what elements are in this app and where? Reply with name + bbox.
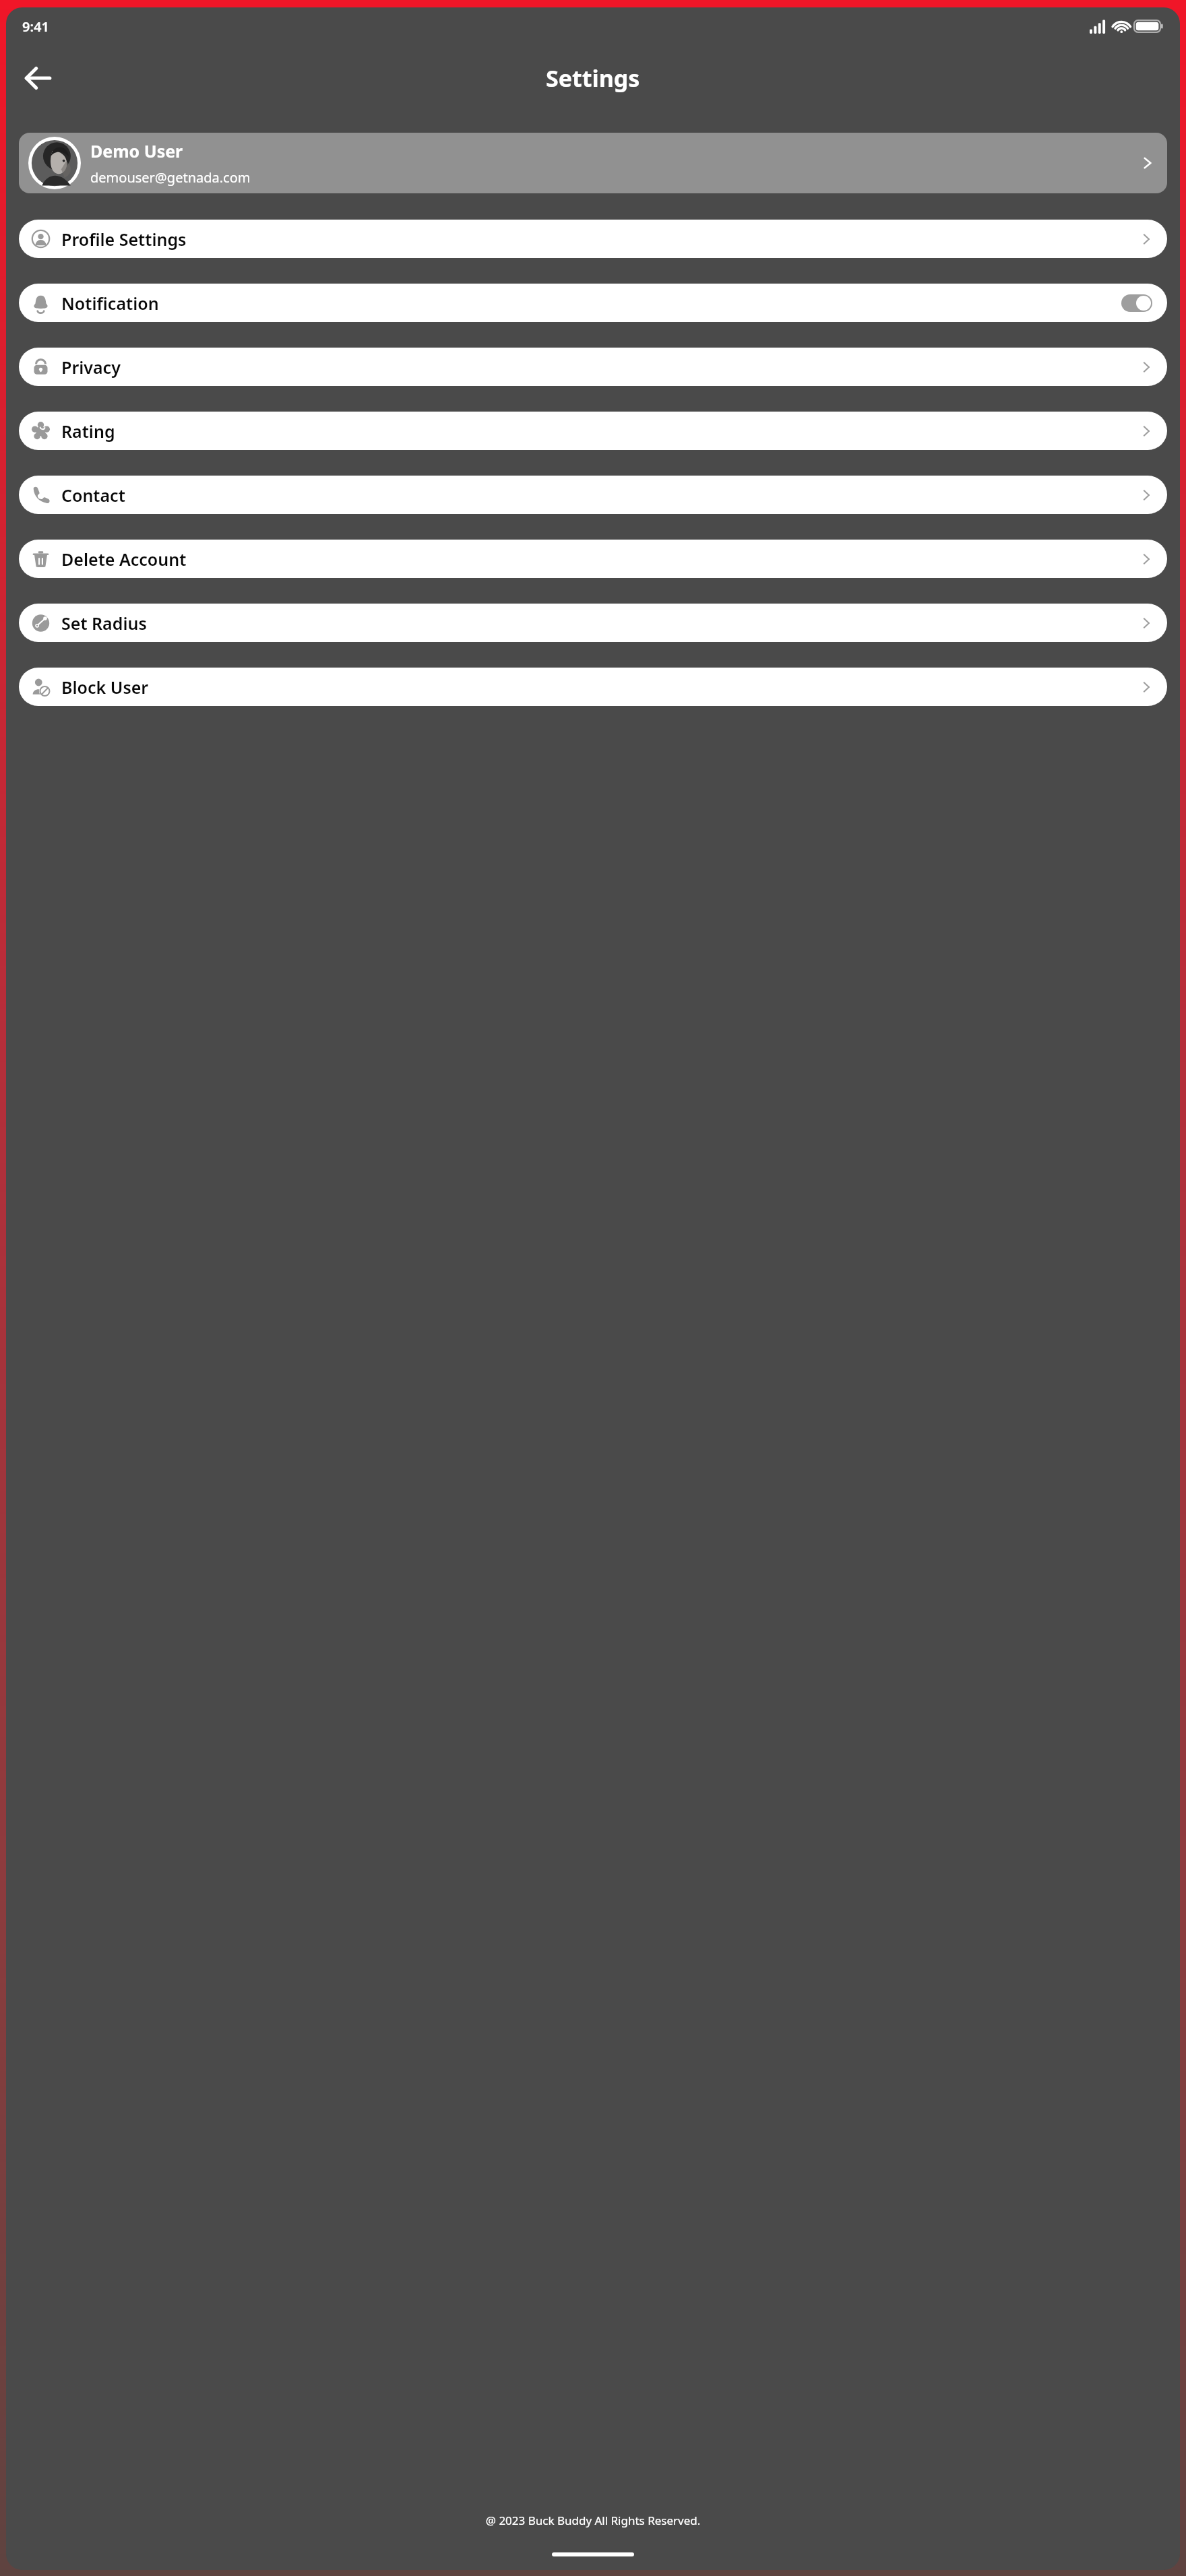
button[interactable]: Rating [19, 412, 1167, 450]
staticText: Set Radius [61, 612, 1140, 635]
staticText: Demo User [90, 139, 183, 162]
button[interactable]: Demo User [19, 133, 1167, 193]
staticText: Delete Account [61, 548, 1140, 571]
button[interactable]: Notification toggle [1121, 294, 1152, 312]
staticText: Contact [61, 484, 1140, 507]
button[interactable]: Contact [19, 476, 1167, 514]
button[interactable]: Privacy [19, 348, 1167, 386]
staticText: Block User [61, 676, 1140, 699]
staticText: @ 2023 Buck Buddy All Rights Reserved. [6, 2513, 1180, 2528]
staticText: Privacy [61, 356, 1140, 379]
button[interactable]: Notification [19, 284, 1167, 322]
button[interactable]: Delete Account [19, 540, 1167, 578]
staticText: Notification [61, 292, 1121, 315]
button[interactable]: Back [17, 57, 59, 99]
staticText: Profile Settings [61, 228, 1140, 251]
staticText: demouser@getnada.com [90, 168, 251, 187]
button[interactable]: Set Radius [19, 604, 1167, 642]
button[interactable]: Block User [19, 668, 1167, 706]
staticText: Settings [546, 63, 640, 94]
staticText: Rating [61, 420, 1140, 443]
staticText: 9:41 [22, 18, 49, 36]
button[interactable]: Profile Settings [19, 220, 1167, 258]
